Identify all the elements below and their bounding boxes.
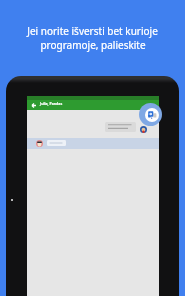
staticText: programoje, palieskite: [40, 38, 146, 52]
staticText: Julia, Pandas: [40, 101, 63, 106]
other: Translate: [139, 103, 162, 126]
other: Back: [31, 103, 36, 108]
staticText: Jei norite išversti bet kurioje: [27, 24, 158, 38]
